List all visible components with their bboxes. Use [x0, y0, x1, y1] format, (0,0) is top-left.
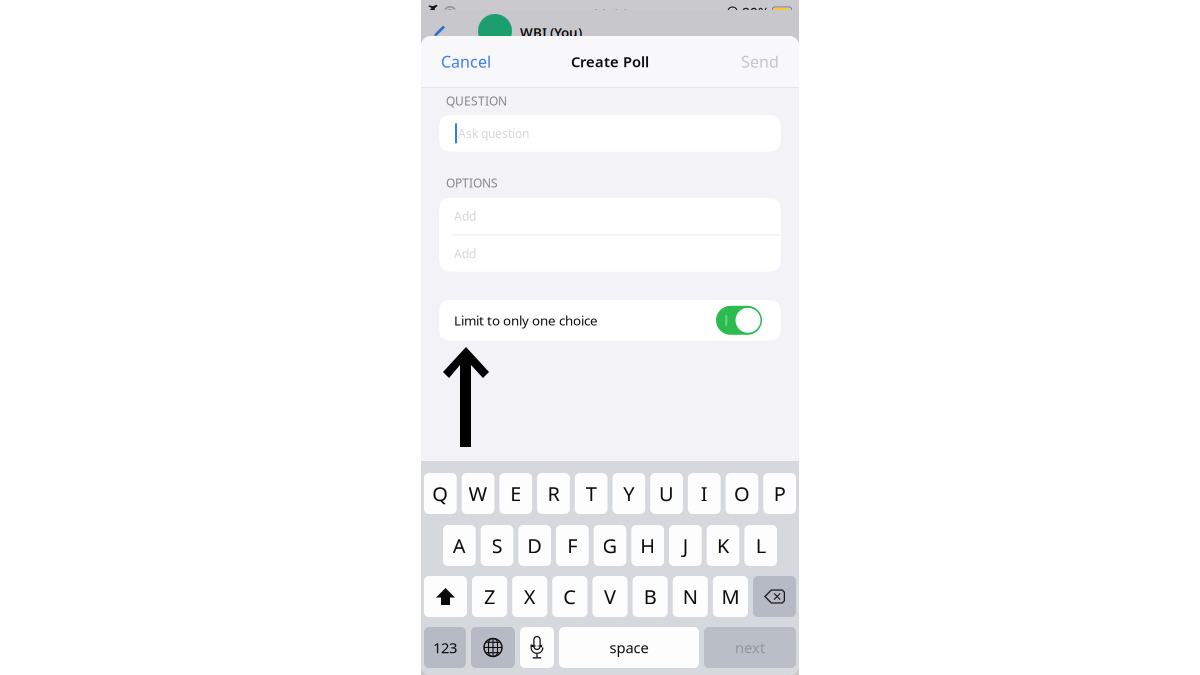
- button[interactable]: Next keyboard: [471, 627, 515, 668]
- staticText: Add: [454, 246, 476, 261]
- button[interactable]: W: [462, 473, 494, 514]
- staticText: QUESTION: [446, 93, 507, 109]
- staticText: E: [510, 480, 521, 507]
- button[interactable]: Y: [612, 473, 645, 514]
- staticText: 21:14: [592, 5, 628, 22]
- staticText: G: [602, 532, 617, 559]
- button[interactable]: P: [763, 473, 796, 514]
- button[interactable]: B: [633, 576, 668, 617]
- button[interactable]: U: [650, 473, 683, 514]
- staticText: Send: [741, 51, 779, 72]
- button[interactable]: A: [443, 525, 476, 566]
- staticText: Cancel: [441, 51, 491, 72]
- staticText: N: [683, 583, 698, 610]
- button[interactable]: Delete: [753, 576, 796, 617]
- staticText: Create Poll: [571, 52, 649, 71]
- button[interactable]: Limit to only one choice: [716, 306, 762, 335]
- staticText: V: [604, 583, 616, 610]
- staticText: O: [734, 480, 750, 507]
- button[interactable]: Q: [424, 473, 457, 514]
- button[interactable]: G: [594, 525, 626, 566]
- staticText: L: [756, 532, 766, 559]
- button[interactable]: H: [631, 525, 664, 566]
- button[interactable]: Dictate: [520, 627, 554, 668]
- button[interactable]: N: [673, 576, 708, 617]
- staticText: I: [701, 480, 708, 507]
- button[interactable]: next: [704, 627, 796, 668]
- staticText: WBI (You): [520, 23, 582, 41]
- button[interactable]: D: [518, 525, 551, 566]
- button[interactable]: E: [499, 473, 532, 514]
- staticText: H: [640, 532, 655, 559]
- button[interactable]: 123: [424, 627, 466, 668]
- staticText: B: [644, 583, 657, 610]
- button[interactable]: S: [481, 525, 513, 566]
- staticText: C: [563, 583, 576, 610]
- button[interactable]: F: [556, 525, 589, 566]
- staticText: A: [453, 532, 466, 559]
- button[interactable]: T: [575, 473, 607, 514]
- button[interactable]: K: [707, 525, 739, 566]
- staticText: D: [527, 532, 542, 559]
- button[interactable]: Cancel: [437, 39, 495, 83]
- staticText: K: [717, 532, 729, 559]
- staticText: next: [735, 638, 765, 657]
- staticText: 80%: [742, 3, 769, 20]
- staticText: T: [586, 480, 597, 507]
- button[interactable]: space: [559, 627, 699, 668]
- staticText: P: [774, 480, 786, 507]
- staticText: Ask question: [458, 125, 529, 141]
- staticText: space: [609, 638, 648, 657]
- staticText: J: [683, 532, 688, 559]
- staticText: M: [721, 583, 739, 610]
- button[interactable]: Send: [737, 39, 783, 83]
- button[interactable]: X: [512, 576, 547, 617]
- button[interactable]: R: [537, 473, 570, 514]
- button[interactable]: M: [713, 576, 748, 617]
- button[interactable]: J: [669, 525, 702, 566]
- staticText: Q: [432, 480, 448, 507]
- staticText: Z: [484, 583, 495, 610]
- staticText: S: [491, 532, 502, 559]
- staticText: F: [567, 532, 577, 559]
- button[interactable]: Shift: [424, 576, 467, 617]
- button[interactable]: O: [726, 473, 758, 514]
- button[interactable]: C: [552, 576, 587, 617]
- staticText: 123: [433, 638, 457, 657]
- button[interactable]: I: [688, 473, 721, 514]
- staticText: Add: [454, 208, 476, 224]
- button[interactable]: L: [744, 525, 777, 566]
- staticText: Limit to only one choice: [454, 311, 598, 329]
- button[interactable]: V: [592, 576, 627, 617]
- staticText: OPTIONS: [446, 175, 498, 191]
- button[interactable]: Z: [472, 576, 507, 617]
- staticText: Y: [623, 480, 634, 507]
- staticText: U: [659, 480, 674, 507]
- staticText: X: [524, 583, 536, 610]
- staticText: R: [547, 480, 559, 507]
- staticText: W: [469, 480, 488, 507]
